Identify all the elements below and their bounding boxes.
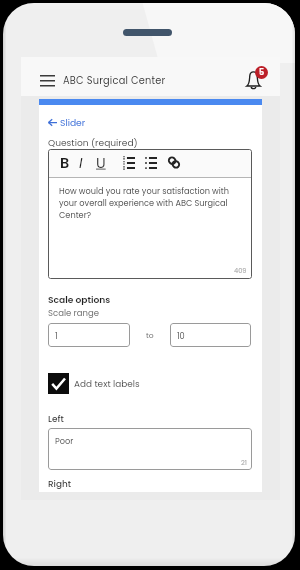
staticText: Scale options — [48, 293, 111, 306]
staticText: Scale range — [48, 307, 99, 319]
button[interactable]: How would you rate your satisfaction wit… — [48, 178, 252, 279]
staticText: Left — [48, 413, 64, 425]
button[interactable]: Open navigation menu — [36, 69, 58, 90]
staticText: Poor — [55, 435, 74, 446]
staticText: 409 — [234, 266, 247, 275]
staticText: 21 — [241, 458, 247, 467]
staticText: 1 — [55, 330, 58, 341]
staticText: to — [146, 330, 154, 341]
staticText: U — [96, 153, 106, 173]
button[interactable]: Add text labels — [48, 373, 140, 394]
button[interactable]: Numbered list — [123, 157, 135, 169]
button[interactable]: 10 — [170, 323, 251, 347]
staticText: 10 — [177, 330, 185, 341]
staticText: 5 — [259, 67, 265, 78]
button[interactable]: Notifications, 5 unread — [241, 66, 267, 92]
button[interactable]: Insert link — [169, 157, 179, 168]
staticText: Right — [48, 478, 72, 490]
button[interactable]: Slider — [48, 116, 86, 129]
staticText: How would you rate your satisfaction wit… — [59, 185, 237, 221]
button[interactable]: B — [58, 153, 71, 173]
staticText: ABC Surgical Center — [63, 74, 166, 88]
staticText: Add text labels — [74, 378, 140, 390]
button[interactable]: Bulleted list — [145, 157, 157, 169]
button[interactable]: U — [94, 153, 107, 173]
staticText: I — [79, 153, 83, 173]
staticText: B — [60, 153, 70, 173]
button[interactable]: Poor — [48, 428, 252, 470]
staticText: Question (required) — [48, 136, 138, 149]
staticText: Slider — [60, 116, 86, 129]
button[interactable]: 1 — [48, 323, 130, 347]
button[interactable]: I — [74, 153, 87, 173]
